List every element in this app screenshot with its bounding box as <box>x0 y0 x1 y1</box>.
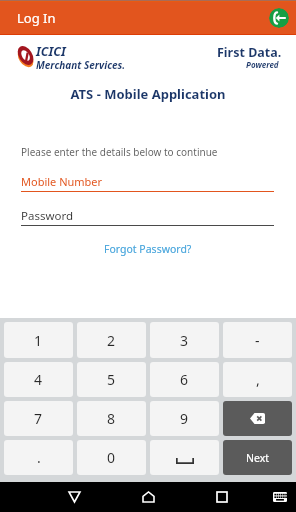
staticText: 7 <box>34 409 43 428</box>
button[interactable]: - <box>223 322 292 358</box>
staticText: 0 <box>107 448 116 467</box>
button[interactable]: 7 <box>4 401 73 436</box>
button[interactable]: Delete <box>223 401 292 436</box>
button[interactable]: Next <box>223 440 292 475</box>
staticText: Log In <box>17 9 56 27</box>
staticText: ATS - Mobile Application <box>0 85 296 103</box>
button[interactable]: Space <box>150 440 219 475</box>
button[interactable]: 4 <box>4 362 73 397</box>
button[interactable]: 8 <box>77 401 146 436</box>
staticText: Password <box>21 208 74 224</box>
button[interactable]: 0 <box>77 440 146 475</box>
button[interactable]: , <box>223 362 292 397</box>
staticText: Forgot Password? <box>104 242 192 256</box>
button[interactable]: 1 <box>4 322 73 358</box>
staticText: Powered <box>246 59 279 70</box>
button[interactable]: 2 <box>77 322 146 358</box>
button[interactable]: Home <box>131 482 165 512</box>
button[interactable]: Back <box>57 482 91 512</box>
other: Delete <box>250 413 265 424</box>
staticText: 1 <box>34 331 43 350</box>
staticText: 4 <box>34 370 43 389</box>
button[interactable]: 5 <box>77 362 146 397</box>
staticText: 8 <box>107 409 116 428</box>
button[interactable]: Forgot Password? <box>98 239 198 259</box>
other: Space <box>176 458 194 464</box>
staticText: Merchant Services. <box>36 58 126 72</box>
button[interactable]: Recents <box>205 482 239 512</box>
staticText: 3 <box>180 331 189 350</box>
staticText: . <box>37 448 41 467</box>
staticText: 2 <box>107 331 116 350</box>
button[interactable]: Switch keyboard <box>267 484 293 510</box>
button[interactable]: . <box>4 440 73 475</box>
staticText: ICICI <box>36 43 66 60</box>
button[interactable]: 9 <box>150 401 219 436</box>
staticText: 9 <box>180 409 189 428</box>
button[interactable]: 6 <box>150 362 219 397</box>
button[interactable]: 3 <box>150 322 219 358</box>
staticText: Mobile Number <box>21 174 103 189</box>
staticText: First Data. <box>217 44 282 61</box>
staticText: - <box>255 331 260 350</box>
button[interactable]: Log In <box>269 8 289 28</box>
staticText: , <box>256 370 260 389</box>
staticText: Please enter the details below to contin… <box>21 145 218 159</box>
staticText: Next <box>246 451 270 465</box>
staticText: 5 <box>107 370 116 389</box>
staticText: 6 <box>180 370 189 389</box>
